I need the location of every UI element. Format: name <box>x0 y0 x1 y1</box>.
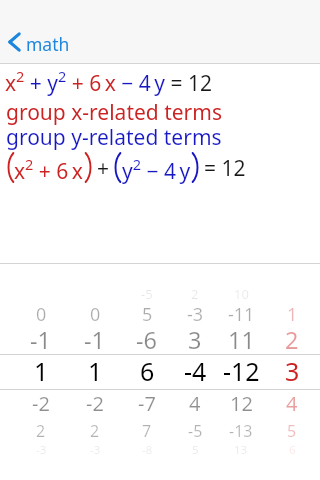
staticText: x2 + y2 + 6 x − 4 y = 12 <box>5 66 212 97</box>
staticText: -2 <box>32 390 50 417</box>
staticText: group x-related terms <box>6 98 222 127</box>
staticText: 2 <box>191 285 199 303</box>
staticText: -3 <box>90 442 101 458</box>
staticText: 12 <box>230 390 253 417</box>
staticText: -5 <box>188 420 203 442</box>
staticText: 0 <box>36 302 47 327</box>
staticText: -13 <box>229 420 253 442</box>
staticText: 5 <box>142 302 153 327</box>
staticText: 1 <box>34 354 49 388</box>
other: Back <box>8 32 21 52</box>
button[interactable]: Back <box>8 30 70 54</box>
staticText: 4 <box>189 390 201 417</box>
staticText: 0 <box>90 302 101 327</box>
staticText: 10 <box>234 285 249 303</box>
staticText: y2 − 4 y <box>122 154 191 185</box>
staticText: -12 <box>223 354 260 388</box>
staticText: = 12 <box>204 154 246 183</box>
staticText: -4 <box>184 354 207 388</box>
staticText: + <box>97 154 110 183</box>
staticText: 1 <box>88 354 103 388</box>
staticText: 6 <box>289 442 296 458</box>
staticText: 5 <box>287 420 297 442</box>
staticText: -6 <box>136 324 158 356</box>
staticText: 4 <box>286 390 298 417</box>
staticText: 7 <box>142 420 152 442</box>
staticText: math <box>26 32 70 56</box>
staticText: 3 <box>188 324 202 356</box>
staticText: 5 <box>192 442 199 458</box>
staticText: -7 <box>138 390 156 417</box>
staticText: 3 <box>285 354 300 388</box>
staticText: -3 <box>36 442 47 458</box>
staticText: 13 <box>234 442 248 458</box>
staticText: -1 <box>84 324 106 356</box>
button[interactable]: 0 <box>0 0 320 480</box>
staticText: -3 <box>187 302 204 327</box>
staticText: x2 + 6 x <box>14 154 83 185</box>
staticText: 11 <box>228 324 255 356</box>
staticText: -8 <box>142 442 153 458</box>
staticText: -2 <box>86 390 104 417</box>
staticText: 2 <box>36 420 46 442</box>
staticText: group y-related terms <box>6 123 222 152</box>
staticText: -5 <box>141 285 153 303</box>
staticText: -11 <box>228 302 255 327</box>
staticText: -1 <box>30 324 52 356</box>
staticText: 2 <box>285 324 299 356</box>
staticText: 6 <box>140 354 155 388</box>
staticText: 2 <box>90 420 100 442</box>
staticText: 1 <box>287 302 298 327</box>
